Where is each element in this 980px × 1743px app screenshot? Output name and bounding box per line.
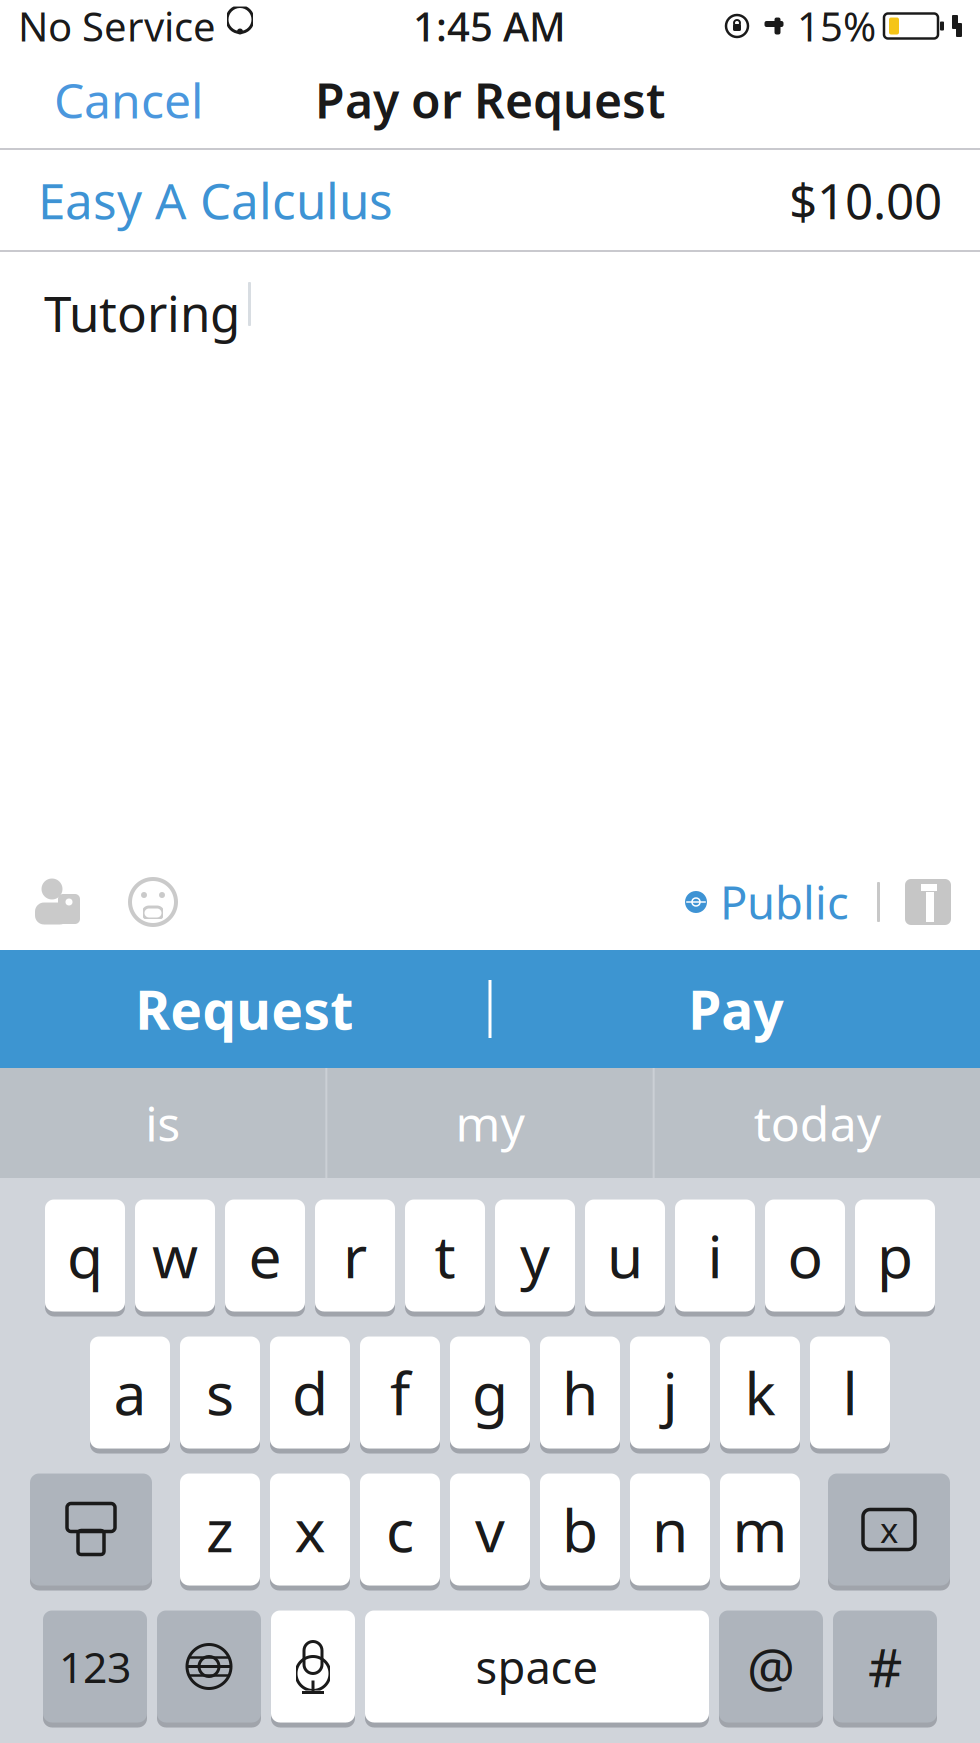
button[interactable]: w — [135, 1199, 215, 1316]
button[interactable]: n — [630, 1473, 710, 1590]
button[interactable]: z — [180, 1473, 260, 1590]
staticText: Pay — [688, 974, 783, 1044]
staticText: v — [475, 1490, 505, 1568]
staticText: l — [842, 1353, 857, 1431]
button[interactable]: v — [450, 1473, 530, 1590]
staticText: r — [343, 1216, 367, 1294]
button[interactable]: i — [675, 1199, 755, 1316]
staticText: # — [868, 1631, 902, 1702]
staticText: s — [206, 1353, 234, 1431]
staticText: 1:45 AM — [413, 0, 566, 52]
button[interactable]: q — [45, 1199, 125, 1316]
button[interactable]: d — [270, 1336, 350, 1453]
staticText: 15% — [797, 0, 876, 52]
staticText: @ — [747, 1631, 795, 1702]
staticText: f — [390, 1353, 410, 1431]
button[interactable]: k — [720, 1336, 800, 1453]
staticText: my — [455, 1091, 524, 1155]
button[interactable]: c — [360, 1473, 440, 1590]
button[interactable]: h — [540, 1336, 620, 1453]
staticText: m — [732, 1490, 787, 1568]
button[interactable]: m — [720, 1473, 800, 1590]
staticText: b — [562, 1490, 598, 1568]
staticText: $10.00 — [789, 167, 942, 233]
staticText: n — [652, 1490, 688, 1568]
button[interactable]: j — [630, 1336, 710, 1453]
staticText: h — [562, 1353, 598, 1431]
button[interactable]: @ — [719, 1610, 823, 1727]
button[interactable]: 123 — [43, 1610, 147, 1727]
button[interactable]: is — [0, 1068, 325, 1178]
staticText: g — [472, 1353, 508, 1431]
button[interactable]: p — [855, 1199, 935, 1316]
staticText: Public — [720, 872, 849, 932]
button[interactable]: s — [180, 1336, 260, 1453]
button[interactable]: r — [315, 1199, 395, 1316]
staticText: space — [475, 1636, 598, 1697]
button[interactable]: o — [765, 1199, 845, 1316]
button[interactable]: Switch keyboard — [157, 1610, 261, 1727]
button[interactable]: l — [810, 1336, 890, 1453]
staticText: e — [248, 1216, 281, 1294]
staticText: z — [206, 1490, 234, 1568]
button[interactable]: Cancel — [38, 54, 219, 146]
staticText: Easy A Calculus — [38, 167, 393, 233]
staticText: Cancel — [54, 68, 203, 132]
staticText: t — [434, 1216, 455, 1294]
staticText: j — [662, 1353, 677, 1431]
button[interactable]: Dictate — [271, 1610, 355, 1727]
staticText: d — [292, 1353, 328, 1431]
button[interactable]: b — [540, 1473, 620, 1590]
staticText: a — [113, 1353, 146, 1431]
staticText: is — [145, 1091, 180, 1155]
staticText: y — [520, 1216, 550, 1294]
staticText: w — [152, 1216, 198, 1294]
button[interactable]: space — [365, 1610, 709, 1727]
button[interactable]: Easy A Calculus — [0, 150, 980, 250]
button[interactable]: Public — [678, 872, 855, 932]
staticText: Tutoring — [44, 280, 240, 345]
staticText: p — [877, 1216, 913, 1294]
staticText: x — [880, 1506, 898, 1552]
button[interactable]: f — [360, 1336, 440, 1453]
staticText: 123 — [59, 1638, 131, 1695]
staticText: o — [787, 1216, 822, 1294]
button[interactable]: x — [270, 1473, 350, 1590]
staticText: today — [754, 1091, 881, 1155]
button[interactable]: today — [655, 1068, 980, 1178]
button[interactable]: a — [90, 1336, 170, 1453]
staticText: k — [744, 1353, 775, 1431]
button[interactable]: Delete — [828, 1473, 950, 1590]
staticText: x — [294, 1490, 325, 1568]
staticText: No Service — [18, 0, 216, 52]
button[interactable]: Shift — [30, 1473, 152, 1590]
button[interactable]: y — [495, 1199, 575, 1316]
button[interactable]: Tag a person — [26, 875, 92, 929]
button[interactable]: u — [585, 1199, 665, 1316]
staticText: q — [67, 1216, 103, 1294]
button[interactable]: e — [225, 1199, 305, 1316]
button[interactable]: my — [327, 1068, 653, 1178]
staticText: Pay or Request — [315, 68, 665, 132]
button[interactable]: Emoji — [120, 875, 186, 929]
staticText: Request — [135, 974, 353, 1044]
staticText: i — [707, 1216, 722, 1294]
button[interactable]: t — [405, 1199, 485, 1316]
staticText: c — [386, 1490, 414, 1568]
button[interactable]: Pay — [491, 950, 980, 1068]
button[interactable]: g — [450, 1336, 530, 1453]
button[interactable]: Request — [0, 950, 488, 1068]
staticText: u — [607, 1216, 643, 1294]
button[interactable]: Share to Facebook — [902, 876, 954, 928]
button[interactable]: # — [833, 1610, 937, 1727]
